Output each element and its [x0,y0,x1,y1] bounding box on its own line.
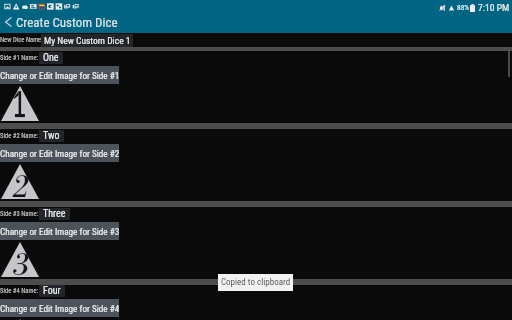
button[interactable]: My New Custom Dice 1 [41,34,133,47]
staticText: Copied to clipboard [221,277,291,288]
staticText: Side #4 Name: [0,287,39,295]
staticText: One [43,52,59,64]
button[interactable]: Four [39,285,65,297]
staticText: Four [43,285,61,297]
button[interactable]: Three [39,208,70,220]
button[interactable]: Change or Edit Image for Side #4 [0,299,119,317]
button[interactable]: Change or Edit Image for Side #2 [0,144,119,162]
staticText: New Dice Name [0,36,42,44]
button[interactable]: Copied to clipboard [218,274,293,291]
staticText: Three [43,208,66,220]
staticText: Change or Edit Image for Side #1 [0,70,119,81]
staticText: 88% [457,3,469,12]
staticText: 2 [12,169,29,204]
staticText: 7:10 PM [478,2,510,13]
button[interactable]: Navigate up [1,15,15,29]
button[interactable]: Change or Edit Image for Side #1 [0,66,119,84]
button[interactable]: Two [39,130,64,142]
staticText: Side #1 Name: [0,54,39,62]
button[interactable]: Change or Edit Image for Side #3 [0,222,119,240]
staticText: Change or Edit Image for Side #2 [0,148,119,159]
staticText: My New Custom Dice 1 [44,35,131,46]
staticText: Side #2 Name: [0,132,39,140]
staticText: Two [43,130,60,142]
staticText: Change or Edit Image for Side #3 [0,226,119,237]
staticText: 3 [12,247,29,282]
staticText: Change or Edit Image for Side #4 [0,303,119,314]
staticText: Create Custom Dice [16,15,118,30]
staticText: Side #3 Name: [0,210,39,218]
button[interactable]: One [39,52,63,64]
